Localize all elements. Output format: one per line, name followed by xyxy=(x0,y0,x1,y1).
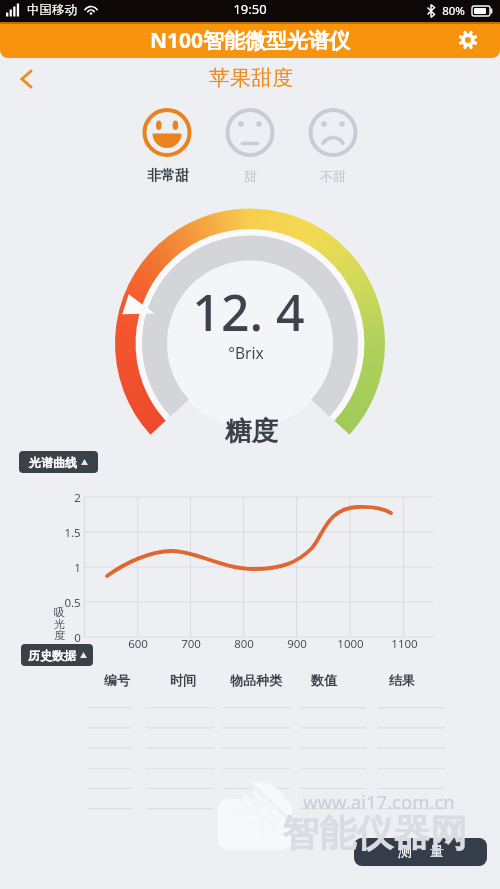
staticText: 结果 xyxy=(389,672,415,688)
staticText: 糖度 xyxy=(225,414,278,447)
staticText: 80% xyxy=(442,3,465,19)
staticText: 非常甜 xyxy=(147,167,189,185)
staticText: 1 xyxy=(74,560,81,576)
staticText: 数值 xyxy=(311,672,337,688)
button[interactable]: 历史数据 xyxy=(21,644,93,666)
staticText: 12. 4 xyxy=(192,278,305,346)
staticText: 800 xyxy=(234,636,254,652)
staticText: 不甜 xyxy=(320,168,346,184)
staticText: 智能仪器网 xyxy=(282,810,467,852)
staticText: www.ai17.com.cn xyxy=(303,789,455,809)
staticText: 0.5 xyxy=(64,595,81,611)
button[interactable]: 测 xyxy=(354,838,487,866)
button[interactable] xyxy=(12,64,42,94)
staticText: 时间 xyxy=(170,672,196,688)
button[interactable] xyxy=(293,102,373,188)
staticText: 19:50 xyxy=(233,0,267,18)
staticText: 量 xyxy=(430,843,444,861)
staticText: 历史数据 xyxy=(28,648,76,663)
staticText: 中国移动 xyxy=(27,2,77,18)
staticText: 光谱曲线 xyxy=(29,455,77,470)
staticText: 1100 xyxy=(391,636,418,652)
staticText: 0 xyxy=(74,630,81,646)
staticText: 甜 xyxy=(244,168,257,184)
staticText: °Brix xyxy=(228,342,264,363)
button[interactable] xyxy=(210,102,290,188)
staticText: 600 xyxy=(128,636,148,652)
staticText: 物品种类 xyxy=(230,672,282,688)
staticText: N100智能微型光谱仪 xyxy=(150,26,351,55)
staticText: 度 xyxy=(54,628,65,642)
staticText: 700 xyxy=(181,636,201,652)
staticText: 测 xyxy=(398,843,412,861)
staticText: 光 xyxy=(54,617,65,631)
button[interactable]: 光谱曲线 xyxy=(19,451,98,473)
staticText: 1000 xyxy=(337,636,364,652)
staticText: 1.5 xyxy=(64,525,81,541)
staticText: 2 xyxy=(74,490,81,506)
staticText: 吸 xyxy=(54,605,65,619)
staticText: 编号 xyxy=(104,672,130,688)
button[interactable] xyxy=(454,26,482,54)
staticText: 苹果甜度 xyxy=(209,65,293,91)
staticText: 900 xyxy=(287,636,307,652)
button[interactable] xyxy=(127,102,207,188)
